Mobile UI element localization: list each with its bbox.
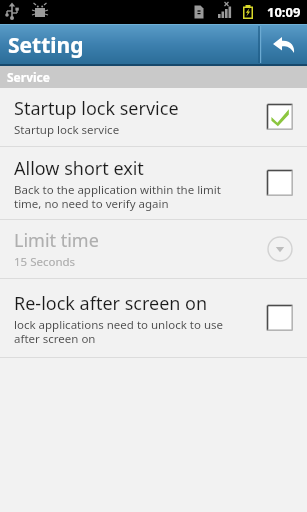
button[interactable]: Re-lock after screen on [0,279,307,357]
button[interactable]: Select limit time [267,236,293,262]
staticText: Re-lock after screen on [14,291,208,316]
button[interactable]: Checked [267,104,293,130]
staticText: 10:09 [267,3,301,21]
button[interactable]: Back [259,24,307,66]
button[interactable]: Unchecked [267,170,293,196]
staticText: lock applications need to unlock to use … [14,317,223,346]
staticText: Startup lock service [14,122,120,138]
staticText: Startup lock service [14,96,179,121]
button[interactable]: Limit time [0,220,307,278]
staticText: 15 Seconds [14,254,76,270]
staticText: Setting [8,31,84,60]
staticText: Service [7,69,50,85]
button[interactable]: Allow short exit [0,147,307,219]
button[interactable]: Startup lock service [0,88,307,146]
staticText: Back to the application within the limit… [14,182,221,211]
button[interactable]: Unchecked [267,305,293,331]
staticText: Limit time [14,228,99,253]
staticText: Allow short exit [14,156,144,181]
